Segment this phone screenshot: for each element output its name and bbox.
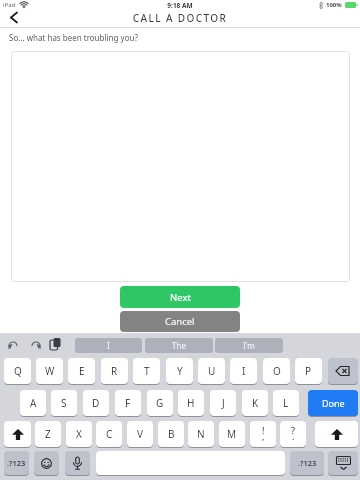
button[interactable]: Y (166, 358, 193, 384)
staticText: ? (291, 424, 296, 436)
staticText: Done (322, 397, 345, 409)
staticText: 100% (326, 1, 342, 9)
button[interactable] (328, 451, 358, 475)
button[interactable]: .?123 (290, 451, 324, 475)
staticText: J (222, 396, 225, 410)
button[interactable]: K (242, 390, 268, 416)
staticText: F (125, 396, 131, 410)
staticText: M (227, 427, 237, 441)
button[interactable] (8, 340, 19, 350)
button[interactable] (65, 451, 90, 475)
button[interactable]: Q (4, 358, 31, 384)
staticText: A (30, 396, 37, 410)
staticText: I'm (243, 340, 255, 351)
staticText: E (79, 364, 85, 378)
button[interactable] (30, 340, 41, 350)
staticText: Q (14, 364, 22, 378)
button[interactable]: V (127, 421, 153, 447)
staticText: U (208, 364, 216, 378)
staticText: D (92, 396, 100, 410)
staticText: , (262, 430, 265, 442)
button[interactable]: Next (120, 286, 240, 308)
button[interactable] (11, 51, 350, 282)
staticText: X (76, 427, 82, 441)
button[interactable]: The (145, 338, 213, 353)
button[interactable]: B (158, 421, 184, 447)
staticText: B (168, 427, 175, 441)
button[interactable]: ! (250, 421, 276, 447)
button[interactable]: I'm (215, 338, 283, 353)
button[interactable]: Done (308, 390, 358, 416)
button[interactable] (96, 451, 285, 475)
staticText: C (106, 427, 113, 441)
button[interactable]: U (198, 358, 225, 384)
staticText: R (111, 364, 118, 378)
staticText: V (137, 427, 143, 441)
button[interactable]: I (230, 358, 257, 384)
staticText: G (156, 396, 164, 410)
button[interactable]: N (188, 421, 214, 447)
staticText: Z (45, 427, 51, 441)
staticText: ! (262, 424, 265, 436)
button[interactable] (34, 451, 59, 475)
button[interactable]: E (68, 358, 95, 384)
staticText: . (292, 430, 295, 442)
staticText: K (252, 396, 259, 410)
staticText: I (107, 340, 110, 351)
button[interactable]: G (147, 390, 173, 416)
staticText: 9:18 AM (0, 1, 360, 10)
staticText: N (197, 427, 205, 441)
staticText: Next (170, 291, 191, 304)
staticText: I (242, 364, 246, 378)
staticText: L (283, 396, 289, 410)
staticText: CALL A DOCTOR (0, 11, 360, 25)
staticText: iPad (3, 1, 16, 9)
staticText: S (61, 396, 67, 410)
staticText: P (305, 364, 312, 378)
button[interactable]: J (210, 390, 236, 416)
button[interactable]: C (96, 421, 122, 447)
button[interactable]: T (133, 358, 160, 384)
button[interactable] (4, 421, 31, 447)
staticText: .?123 (7, 458, 26, 468)
button[interactable]: Cancel (120, 311, 240, 332)
staticText: W (45, 364, 55, 378)
button[interactable]: F (115, 390, 141, 416)
staticText: So... what has been troubling you? (9, 32, 138, 43)
button[interactable]: X (66, 421, 92, 447)
button[interactable]: Z (35, 421, 61, 447)
button[interactable] (315, 421, 358, 447)
button[interactable] (328, 358, 358, 384)
button[interactable]: I (75, 338, 142, 353)
button[interactable]: M (219, 421, 245, 447)
staticText: Cancel (165, 315, 195, 328)
button[interactable]: .?123 (4, 451, 29, 475)
staticText: The (172, 340, 186, 351)
staticText: T (144, 364, 150, 378)
button[interactable]: O (263, 358, 290, 384)
button[interactable]: D (83, 390, 109, 416)
staticText: Y (177, 364, 183, 378)
button[interactable]: A (20, 390, 46, 416)
button[interactable]: R (101, 358, 128, 384)
button[interactable] (50, 338, 61, 351)
button[interactable] (10, 12, 18, 23)
button[interactable]: P (295, 358, 322, 384)
staticText: H (187, 396, 195, 410)
button[interactable]: H (178, 390, 204, 416)
button[interactable]: ? (280, 421, 306, 447)
staticText: .?123 (298, 458, 317, 468)
button[interactable]: S (51, 390, 77, 416)
staticText: O (273, 364, 281, 378)
button[interactable]: W (36, 358, 63, 384)
button[interactable]: L (273, 390, 299, 416)
